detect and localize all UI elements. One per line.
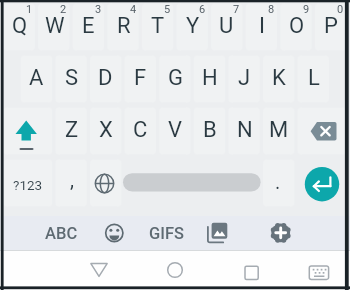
staticText: 0 xyxy=(337,3,344,15)
button[interactable]: V xyxy=(158,104,193,156)
button[interactable]: X xyxy=(88,104,123,156)
staticText: D xyxy=(98,65,113,91)
button[interactable]: U xyxy=(209,0,244,52)
staticText: 1 xyxy=(26,3,33,15)
staticText: 8 xyxy=(268,3,275,15)
button[interactable]: G xyxy=(158,52,193,104)
staticText: S xyxy=(65,65,79,91)
staticText: F xyxy=(134,65,147,91)
staticText: P xyxy=(324,13,338,39)
staticText: O xyxy=(289,13,305,39)
button[interactable]: N xyxy=(227,104,262,156)
button[interactable]: O xyxy=(279,0,314,52)
staticText: H xyxy=(202,65,218,91)
button[interactable] xyxy=(122,158,260,208)
button[interactable]: P xyxy=(313,0,348,52)
button[interactable]: GIFS xyxy=(144,216,188,251)
staticText: Z xyxy=(65,117,79,143)
staticText: G xyxy=(168,65,183,91)
staticText: GIFS xyxy=(149,224,184,243)
button[interactable]: D xyxy=(88,52,123,104)
button[interactable] xyxy=(161,255,189,285)
staticText: 7 xyxy=(233,3,240,15)
staticText: 9 xyxy=(303,3,310,15)
button[interactable] xyxy=(100,218,130,248)
staticText: W xyxy=(45,13,65,39)
button[interactable] xyxy=(303,258,333,284)
staticText: . xyxy=(275,170,281,193)
staticText: 6 xyxy=(199,3,206,15)
button[interactable]: B xyxy=(192,104,227,156)
button[interactable]: ?123 xyxy=(3,160,53,210)
button[interactable] xyxy=(296,106,346,156)
staticText: ?123 xyxy=(13,177,43,193)
staticText: 5 xyxy=(164,3,171,15)
button[interactable]: T xyxy=(140,0,175,52)
button[interactable]: . xyxy=(260,155,295,207)
staticText: M xyxy=(269,117,289,143)
button[interactable]: R xyxy=(106,0,141,52)
staticText: I xyxy=(259,13,265,39)
button[interactable] xyxy=(85,255,113,285)
button[interactable] xyxy=(237,255,265,285)
button[interactable] xyxy=(266,218,296,248)
staticText: Y xyxy=(186,13,200,39)
staticText: K xyxy=(272,65,286,91)
staticText: U xyxy=(219,13,234,39)
staticText: V xyxy=(168,117,183,143)
button[interactable]: E xyxy=(71,0,106,52)
button[interactable]: Q xyxy=(2,0,37,52)
button[interactable]: L xyxy=(296,52,331,104)
button[interactable]: H xyxy=(192,52,227,104)
button[interactable] xyxy=(204,218,234,248)
staticText: 3 xyxy=(95,3,102,15)
button[interactable]: A xyxy=(19,52,54,104)
staticText: 4 xyxy=(130,3,137,15)
staticText: E xyxy=(82,13,95,39)
button[interactable]: J xyxy=(227,52,262,104)
staticText: A xyxy=(29,65,44,91)
button[interactable]: Z xyxy=(54,104,89,156)
staticText: J xyxy=(238,65,251,91)
button[interactable]: I xyxy=(244,0,279,52)
staticText: X xyxy=(99,117,113,143)
button[interactable] xyxy=(2,106,52,156)
button[interactable] xyxy=(88,158,122,208)
button[interactable]: K xyxy=(261,52,296,104)
staticText: 2 xyxy=(60,3,67,15)
button[interactable]: Y xyxy=(175,0,210,52)
staticText: R xyxy=(117,13,131,39)
staticText: T xyxy=(151,13,165,39)
staticText: L xyxy=(308,65,320,91)
button[interactable] xyxy=(296,158,346,208)
button[interactable]: W xyxy=(37,0,72,52)
button[interactable]: , xyxy=(54,153,89,205)
staticText: Q xyxy=(12,13,28,39)
button[interactable]: S xyxy=(54,52,89,104)
staticText: ABC xyxy=(45,224,78,243)
staticText: , xyxy=(70,168,74,191)
button[interactable]: ABC xyxy=(39,216,83,251)
button[interactable]: F xyxy=(123,52,158,104)
button[interactable]: M xyxy=(261,104,296,156)
staticText: C xyxy=(133,117,148,143)
staticText: B xyxy=(203,117,217,143)
button[interactable]: C xyxy=(123,104,158,156)
staticText: N xyxy=(237,117,253,143)
